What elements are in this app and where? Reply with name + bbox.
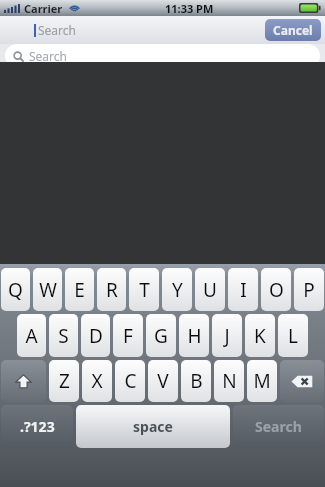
button[interactable]: V [148, 360, 178, 402]
staticText: U [203, 277, 217, 303]
staticText: B [190, 368, 203, 394]
button[interactable]: M [247, 360, 277, 402]
button[interactable]: Cancel [265, 19, 321, 41]
staticText: V [157, 368, 169, 394]
button[interactable]: H [179, 314, 209, 357]
button[interactable]: Search [5, 44, 320, 68]
staticText: P [303, 277, 315, 303]
button[interactable]: W [33, 268, 62, 311]
staticText: .?123 [20, 417, 55, 436]
staticText: C [124, 368, 137, 394]
button[interactable]: T [129, 268, 159, 311]
staticText: G [154, 323, 168, 349]
button[interactable]: L [278, 314, 308, 357]
button[interactable]: C [115, 360, 145, 402]
staticText: W [39, 277, 57, 303]
staticText: Search [255, 417, 302, 436]
staticText: Q [8, 277, 23, 303]
button[interactable]: R [97, 268, 126, 311]
button[interactable]: Search [233, 405, 324, 448]
staticText: R [106, 277, 118, 303]
staticText: J [224, 323, 230, 349]
staticText: D [89, 323, 103, 349]
button[interactable]: Backspace [280, 360, 324, 402]
staticText: I [240, 277, 247, 303]
staticText: Carrier [24, 1, 63, 16]
button[interactable]: .?123 [1, 405, 73, 448]
staticText: 11:33 PM [165, 1, 214, 16]
staticText: Cancel [273, 22, 313, 38]
button[interactable]: P [294, 268, 324, 311]
button[interactable]: S [49, 314, 78, 357]
button[interactable]: N [214, 360, 244, 402]
button[interactable]: D [81, 314, 110, 357]
button[interactable]: Shift [1, 360, 46, 402]
staticText: F [123, 323, 133, 349]
staticText: T [139, 277, 150, 303]
button[interactable]: Z [49, 360, 79, 402]
button[interactable]: O [261, 268, 291, 311]
button[interactable]: J [212, 314, 242, 357]
staticText: Search [29, 48, 67, 64]
button[interactable]: I [228, 268, 258, 311]
staticText: Z [59, 368, 70, 394]
staticText: O [269, 277, 284, 303]
staticText: N [222, 368, 237, 394]
button[interactable]: A [17, 314, 46, 357]
button[interactable]: Q [1, 268, 30, 311]
staticText: space [133, 417, 173, 436]
staticText: M [253, 368, 271, 394]
staticText: Search [38, 22, 76, 38]
staticText: Y [172, 277, 183, 303]
button[interactable]: E [65, 268, 94, 311]
button[interactable]: Y [162, 268, 192, 311]
staticText: S [58, 323, 69, 349]
button[interactable]: X [82, 360, 112, 402]
button[interactable]: B [181, 360, 211, 402]
button[interactable]: K [245, 314, 275, 357]
staticText: H [187, 323, 202, 349]
staticText: K [254, 323, 266, 349]
staticText: E [74, 277, 85, 303]
staticText: L [288, 323, 298, 349]
staticText: A [25, 323, 38, 349]
button[interactable]: F [113, 314, 143, 357]
button[interactable]: U [195, 268, 225, 311]
button[interactable]: space [76, 405, 230, 448]
button[interactable]: G [146, 314, 176, 357]
staticText: X [91, 368, 103, 394]
